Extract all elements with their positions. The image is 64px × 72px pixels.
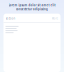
staticText: More <box>51 17 58 20</box>
staticText: consectetur adipiscing <box>16 7 48 11</box>
staticText: Lorem ipsum dolor sit amet elit <box>8 3 55 7</box>
staticText: Section <box>5 17 15 20</box>
